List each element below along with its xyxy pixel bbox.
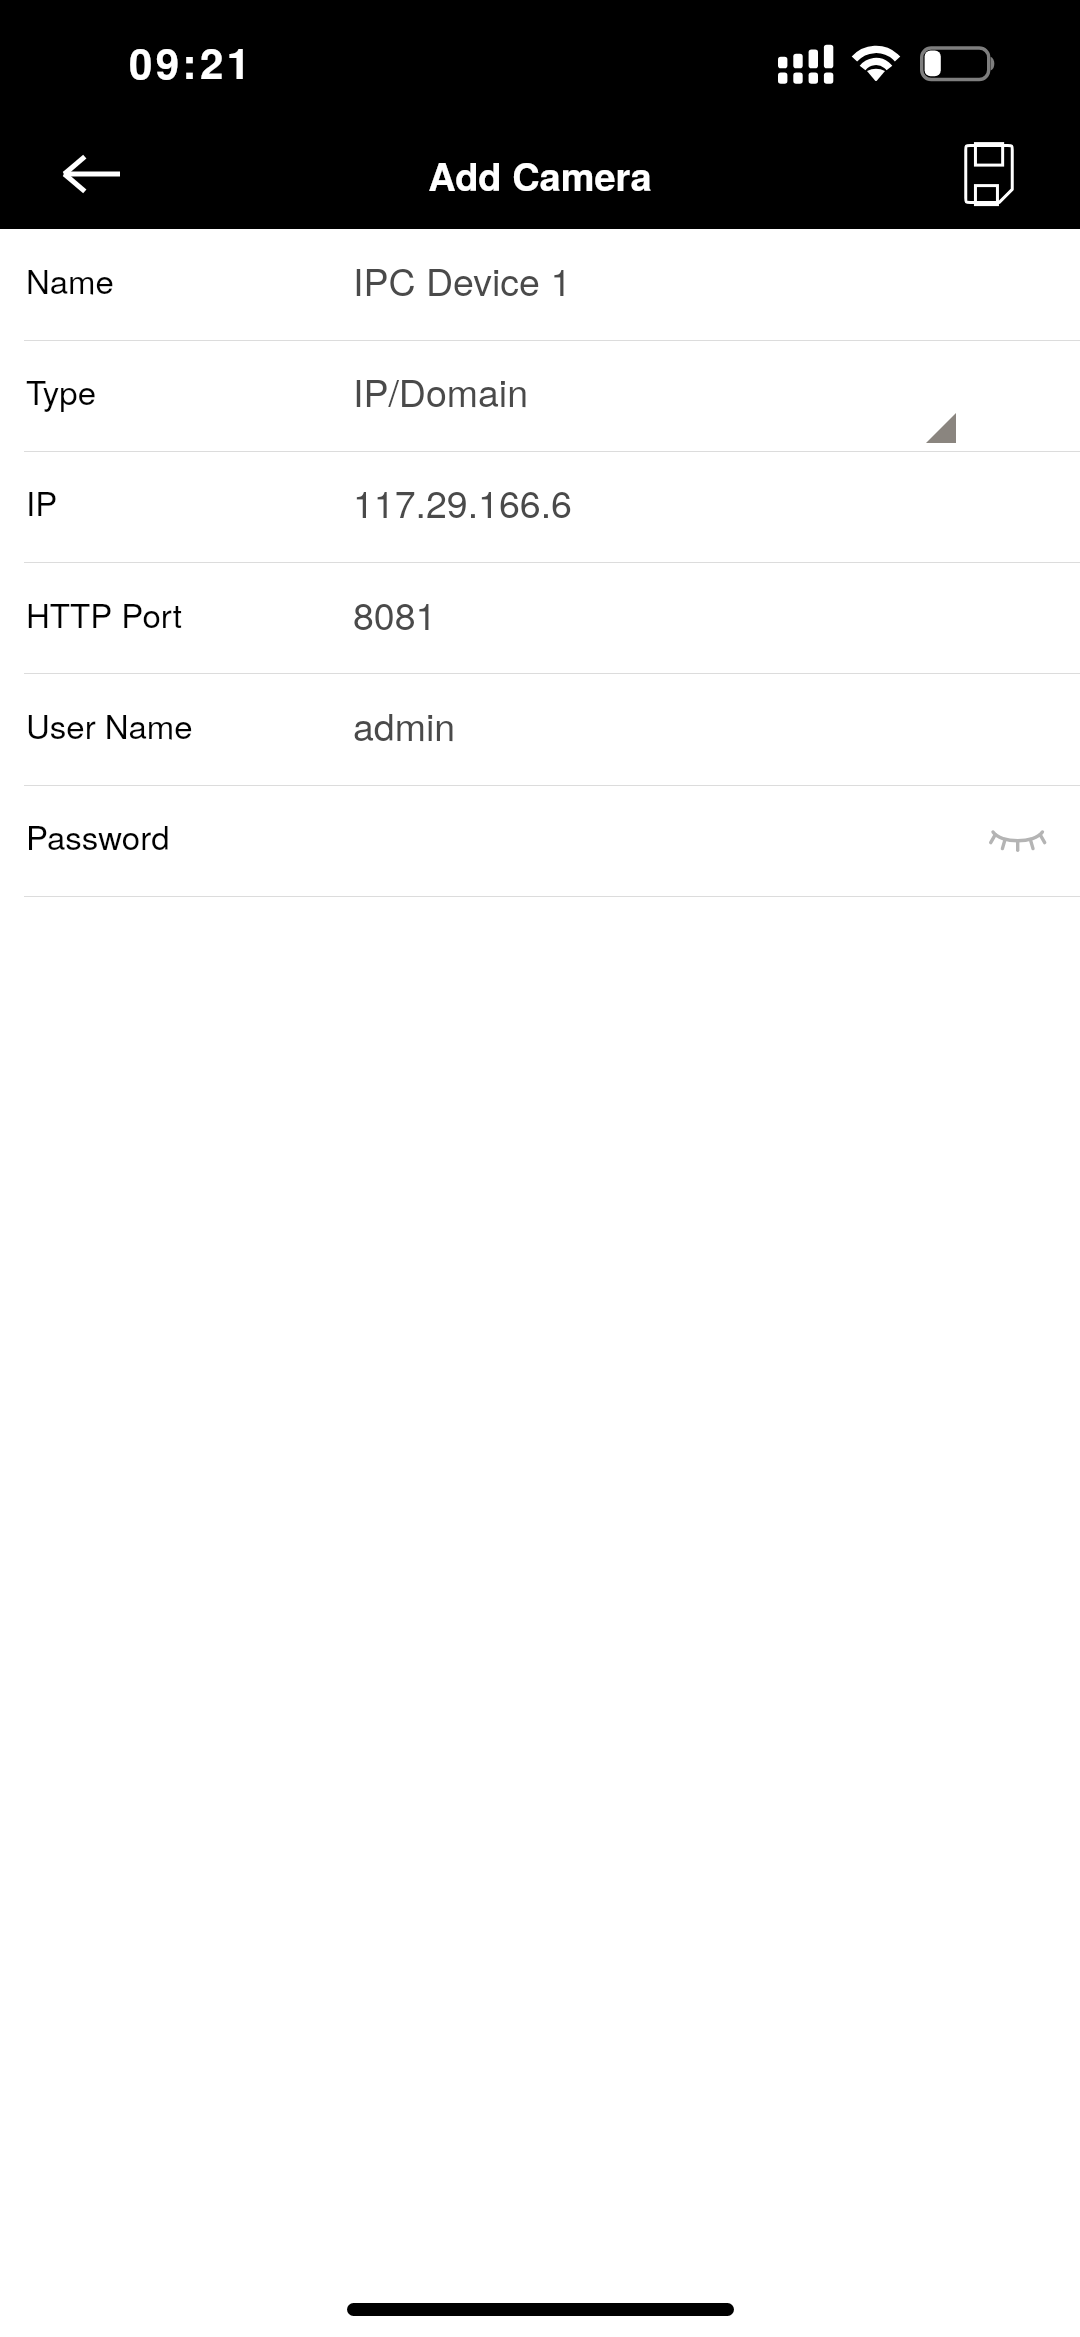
staticText: 8081 [353,587,437,641]
button[interactable]: Password [0,785,1080,896]
button[interactable]: Type [0,340,1080,451]
button[interactable]: IP [0,451,1080,562]
button[interactable]: User Name [0,674,1080,785]
staticText: 117.29.166.6 [353,475,572,529]
button[interactable]: Save [933,119,1045,229]
staticText: 09:21 [129,32,254,92]
staticText: HTTP Port [26,590,183,637]
staticText: Add Camera [428,148,652,202]
staticText: IPC Device 1 [353,253,572,307]
staticText: Password [26,812,170,859]
staticText: User Name [26,701,193,748]
button[interactable]: Name [0,229,1080,340]
button[interactable]: HTTP Port [0,563,1080,674]
staticText: admin [353,698,456,752]
button[interactable]: Back [22,119,160,229]
staticText: IP/Domain [353,364,529,418]
staticText: Name [26,256,114,303]
button[interactable]: Show password [957,785,1080,896]
staticText: IP [26,478,58,525]
staticText: Type [26,367,97,414]
